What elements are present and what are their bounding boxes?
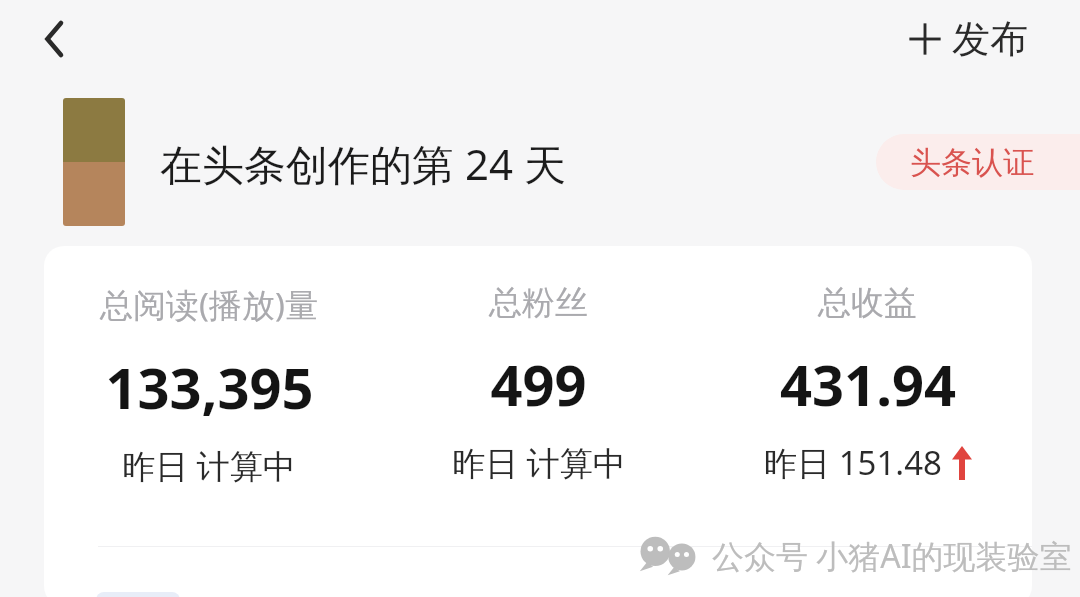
staticText: 总粉丝 [489,282,588,324]
button[interactable]: 头条认证 [876,134,1080,190]
button[interactable]: 发布 [870,4,1066,74]
staticText: 总阅读(播放)量 [100,282,318,327]
staticText: 发布 [952,15,1028,63]
staticText: 昨日 151.48 [764,440,942,485]
button[interactable] [96,592,180,597]
staticText: 昨日 计算中 [122,443,296,488]
staticText: 133,395 [105,349,314,425]
staticText: 在头条创作的第 24 天 [160,135,566,192]
staticText: 头条认证 [910,143,1034,182]
staticText: 431.94 [780,346,956,422]
button[interactable]: 总阅读(播放)量 [44,282,374,488]
button[interactable]: 总粉丝 [374,282,703,485]
button[interactable]: Back [18,0,96,78]
button[interactable]: Profile avatar [63,98,125,226]
staticText: 公众号 小猪AI的现装验室 [712,534,1072,578]
staticText: 总收益 [818,282,917,324]
staticText: 昨日 计算中 [452,440,626,485]
staticText: 499 [490,346,587,422]
button[interactable]: 总收益 [703,282,1032,485]
